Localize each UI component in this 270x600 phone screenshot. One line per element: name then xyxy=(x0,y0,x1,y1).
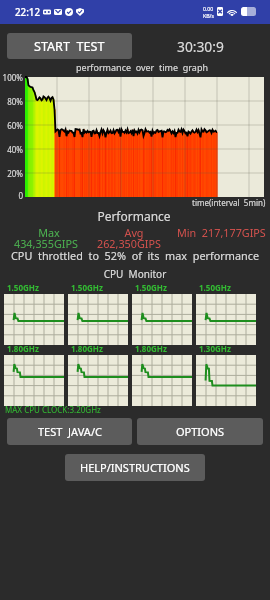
staticText: START TEST xyxy=(34,38,105,55)
staticText: Performance xyxy=(0,208,268,224)
staticText: HELP/INSTRUCTIONS xyxy=(80,460,190,475)
staticText: 20% xyxy=(0,168,23,179)
staticText: 1.80GHz xyxy=(71,343,103,354)
staticText: Avg xyxy=(116,225,152,240)
staticText: 30:30:9 xyxy=(177,37,224,56)
staticText: 40% xyxy=(0,144,23,155)
staticText: 1.50GHz xyxy=(199,282,231,293)
staticText: 1.50GHz xyxy=(7,282,39,293)
staticText: OPTIONS xyxy=(176,424,225,439)
staticText: 1.50GHz xyxy=(135,282,167,293)
staticText: CPU Monitor xyxy=(0,267,270,281)
button[interactable]: HELP/INSTRUCTIONS xyxy=(65,454,205,481)
staticText: 1.80GHz xyxy=(135,343,167,354)
staticText: 1.50GHz xyxy=(71,282,103,293)
staticText: 60% xyxy=(0,120,23,131)
staticText: 1.30GHz xyxy=(199,343,231,354)
staticText: 22:12 xyxy=(15,6,41,19)
staticText: Min 217,177GIPS xyxy=(177,225,266,240)
staticText: 0 xyxy=(0,190,23,201)
staticText: CPU throttled to 52% of its max performa… xyxy=(0,248,270,263)
button[interactable]: TEST JAVA/C xyxy=(7,418,132,445)
staticText: performance over time graph xyxy=(14,61,270,73)
button[interactable]: OPTIONS xyxy=(137,418,263,445)
staticText: time(interval 5min) xyxy=(192,197,266,208)
staticText: 434,355GIPS xyxy=(14,236,78,251)
staticText: 1.80GHz xyxy=(7,343,39,354)
staticText: KB/s xyxy=(203,12,214,19)
staticText: Max xyxy=(29,225,69,240)
staticText: 0.00 xyxy=(203,5,214,12)
staticText: MAX CPU CLOCK:3.20GHz xyxy=(5,404,101,415)
staticText: 100% xyxy=(0,72,23,83)
staticText: 80% xyxy=(0,96,23,107)
button[interactable]: START TEST xyxy=(7,33,132,59)
staticText: TEST JAVA/C xyxy=(38,424,102,439)
staticText: 262,350GIPS xyxy=(97,236,161,251)
